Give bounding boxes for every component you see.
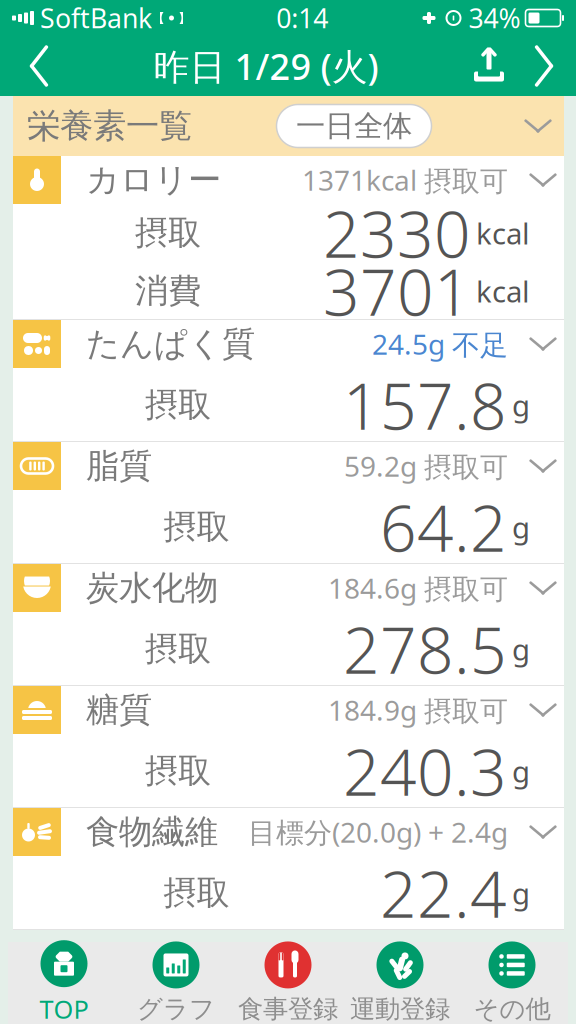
staticText: 184.6g 摂取可 [328,569,508,607]
staticText: 184.9g 摂取可 [328,691,508,729]
staticText: 59.2g 摂取可 [344,447,508,485]
button[interactable]: 食物繊維 [13,808,564,930]
staticText: 脂質 [86,445,152,486]
staticText: 糖質 [86,689,152,730]
staticText: 0:14 [276,0,328,36]
staticText: カロリー [86,159,221,200]
staticText: 炭水化物 [86,567,218,608]
staticText: g [512,629,530,668]
staticText: 240.3 [343,728,507,813]
staticText: 摂取 [145,750,211,791]
staticText: 2330 [323,190,471,275]
button[interactable]: その他 [456,942,568,1024]
staticText: 3701 [323,248,471,333]
button[interactable]: たんぱく質 [13,320,564,442]
button[interactable]: 次の日 [518,37,570,95]
staticText: 64.2 [380,484,507,569]
staticText: 24.5g 不足 [372,325,508,363]
staticText: 34% [468,0,520,36]
staticText: 摂取 [145,628,211,669]
staticText: 消費 [135,270,201,311]
staticText: g [512,385,530,424]
staticText: 278.5 [343,606,507,691]
button[interactable]: グラフ [120,942,232,1024]
staticText: TOP [39,992,88,1024]
staticText: kcal [476,213,530,252]
staticText: 摂取 [145,384,211,425]
staticText: 栄養素一覧 [27,105,192,146]
staticText: g [512,751,530,790]
button[interactable]: 運動登録 [344,942,456,1024]
staticText: kcal [476,271,530,310]
staticText: 1371kcal 摂取可 [302,161,508,199]
button[interactable]: 炭水化物 [13,564,564,686]
staticText: SoftBank [40,0,152,36]
button[interactable]: 糖質 [13,686,564,808]
staticText: 22.4 [380,850,507,935]
button[interactable]: 脂質 [13,442,564,564]
staticText: 摂取 [163,506,229,547]
staticText: 目標分(20.0g) + 2.4g [248,813,508,851]
staticText: 食事登録 [238,993,338,1024]
staticText: グラフ [137,993,215,1024]
button[interactable]: 折りたたむ [516,104,560,148]
staticText: g [512,873,530,912]
staticText: 摂取 [135,212,201,253]
button[interactable]: TOP [8,942,120,1024]
staticText: その他 [473,993,550,1024]
staticText: 食物繊維 [86,811,218,852]
staticText: 157.8 [343,362,507,447]
staticText: 昨日 1/29 (火) [153,42,378,90]
button[interactable]: 一日全体 [276,104,431,147]
button[interactable]: 前の日 [6,37,72,95]
staticText: 一日全体 [296,108,412,144]
staticText: 運動登録 [350,993,450,1024]
staticText: 摂取 [163,872,229,913]
staticText: g [512,507,530,546]
staticText: たんぱく質 [86,323,255,364]
button[interactable]: 食事登録 [232,942,344,1024]
button[interactable]: カロリー [13,156,564,320]
button[interactable]: 共有 [460,37,518,95]
